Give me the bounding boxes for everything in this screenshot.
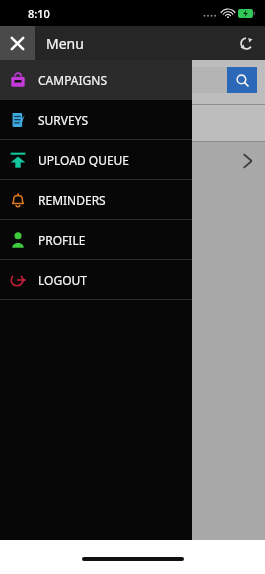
button[interactable]: m: [0, 105, 265, 141]
staticText: UPLOAD QUEUE: [38, 152, 130, 168]
staticText: CAMPAIGNS: [38, 72, 107, 88]
button[interactable]: SURVEYS: [0, 100, 192, 139]
staticText: REMINDERS: [38, 192, 106, 208]
button[interactable]: REMINDERS: [0, 180, 192, 219]
staticText: PROFILE: [38, 232, 86, 248]
staticText: Menu: [46, 34, 84, 53]
button[interactable]: Close menu: [0, 26, 35, 60]
button[interactable]: [8, 67, 227, 93]
staticText: SURVEYS: [38, 112, 89, 128]
button[interactable]: Search: [227, 67, 257, 93]
button[interactable]: LOGOUT: [0, 260, 192, 299]
button[interactable]: CAMPAIGNS: [0, 60, 192, 99]
button[interactable]: UPLOAD QUEUE: [0, 140, 192, 179]
staticText: m: [4, 116, 15, 131]
staticText: 8:10: [28, 6, 50, 21]
button[interactable]: Refresh: [227, 26, 265, 60]
button[interactable]: PROFILE: [0, 220, 192, 259]
staticText: LOGOUT: [38, 272, 87, 288]
button[interactable]: [0, 142, 265, 180]
